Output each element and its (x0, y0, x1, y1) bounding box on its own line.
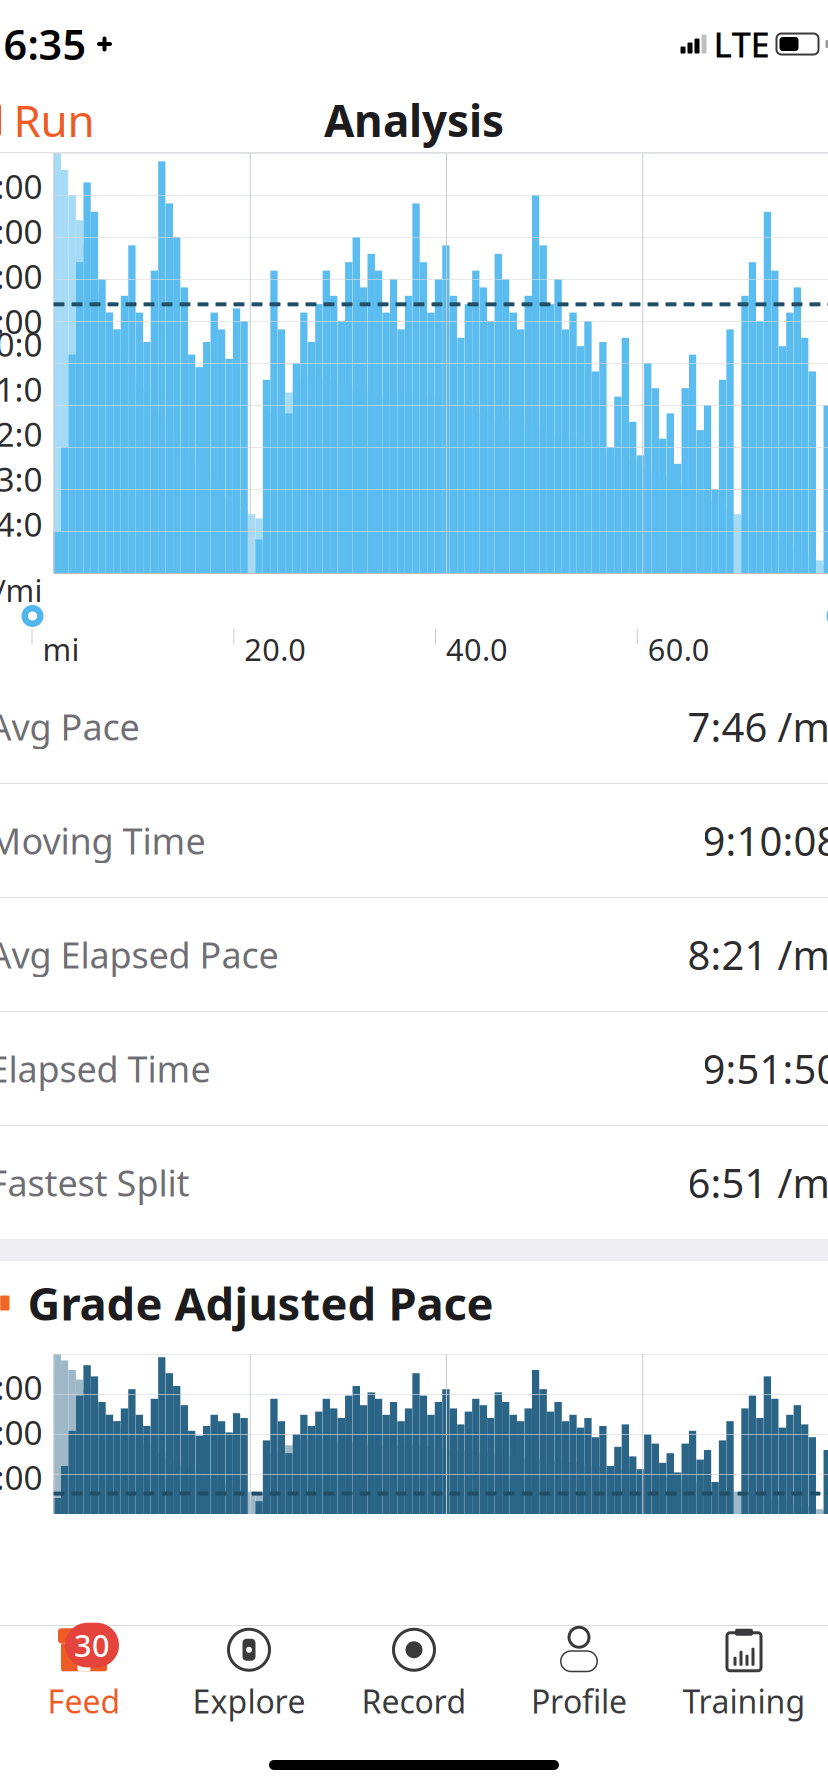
staticText: 8:21 /mi (687, 928, 828, 981)
staticText: 11:00 (0, 367, 42, 455)
staticText: 60.0 (648, 629, 710, 669)
button[interactable]: Explore (166, 1631, 331, 1717)
button[interactable]: Elapsed Time (0, 1012, 828, 1126)
button[interactable]: Record (331, 1631, 496, 1717)
staticText: 40.0 (446, 629, 508, 669)
staticText: /mi (0, 570, 42, 610)
staticText: Moving Time (0, 817, 205, 864)
button[interactable]: Profile (496, 1631, 661, 1717)
staticText: 30 (74, 1625, 110, 1665)
staticText: Record (361, 1680, 466, 1722)
staticText: Fastest Split (0, 1159, 189, 1206)
staticText: Avg Elapsed Pace (0, 931, 278, 978)
staticText: 14:00 (0, 502, 42, 590)
staticText: 13:00 (0, 457, 42, 545)
staticText: 8:00 (0, 1455, 42, 1499)
staticText: Avg Pace (0, 703, 139, 750)
staticText: 7:46 /mi (687, 700, 828, 753)
staticText: 6:35 (3, 17, 86, 71)
staticText: Elapsed Time (0, 1045, 210, 1092)
staticText: 12:00 (0, 412, 42, 500)
button[interactable]: 30 (1, 1631, 166, 1717)
button[interactable]: Fastest Split (0, 1126, 828, 1239)
staticText: Explore (192, 1680, 305, 1722)
button[interactable]: Moving Time (0, 784, 828, 898)
button[interactable]: Avg Pace (0, 670, 828, 784)
staticText: 7:00 (0, 209, 42, 253)
staticText: 6:51 /mi (687, 1156, 828, 1209)
staticText: Run (13, 91, 94, 149)
staticText: 6:00 (0, 164, 42, 208)
staticText: 8:00 (0, 254, 42, 298)
staticText: Profile (531, 1680, 627, 1722)
button[interactable]: Run (0, 94, 108, 146)
button[interactable]: Training (661, 1631, 826, 1717)
staticText: 10:00 (0, 322, 42, 410)
staticText: Grade Adjusted Pace (27, 1273, 493, 1333)
staticText: 9:10:08 (702, 814, 828, 867)
staticText: LTE (713, 21, 769, 67)
staticText: Feed (47, 1680, 120, 1722)
staticText: Analysis (324, 91, 504, 149)
staticText: 6:00 (0, 1365, 42, 1409)
staticText: Training (682, 1680, 805, 1722)
button[interactable]: Avg Elapsed Pace (0, 898, 828, 1012)
button[interactable]: Grade Adjusted Pace (0, 1261, 828, 1345)
staticText: 7:00 (0, 1410, 42, 1454)
staticText: mi (42, 629, 79, 669)
staticText: 20.0 (244, 629, 306, 669)
staticText: 9:00 (0, 299, 42, 343)
staticText: 9:51:50 (702, 1042, 828, 1095)
